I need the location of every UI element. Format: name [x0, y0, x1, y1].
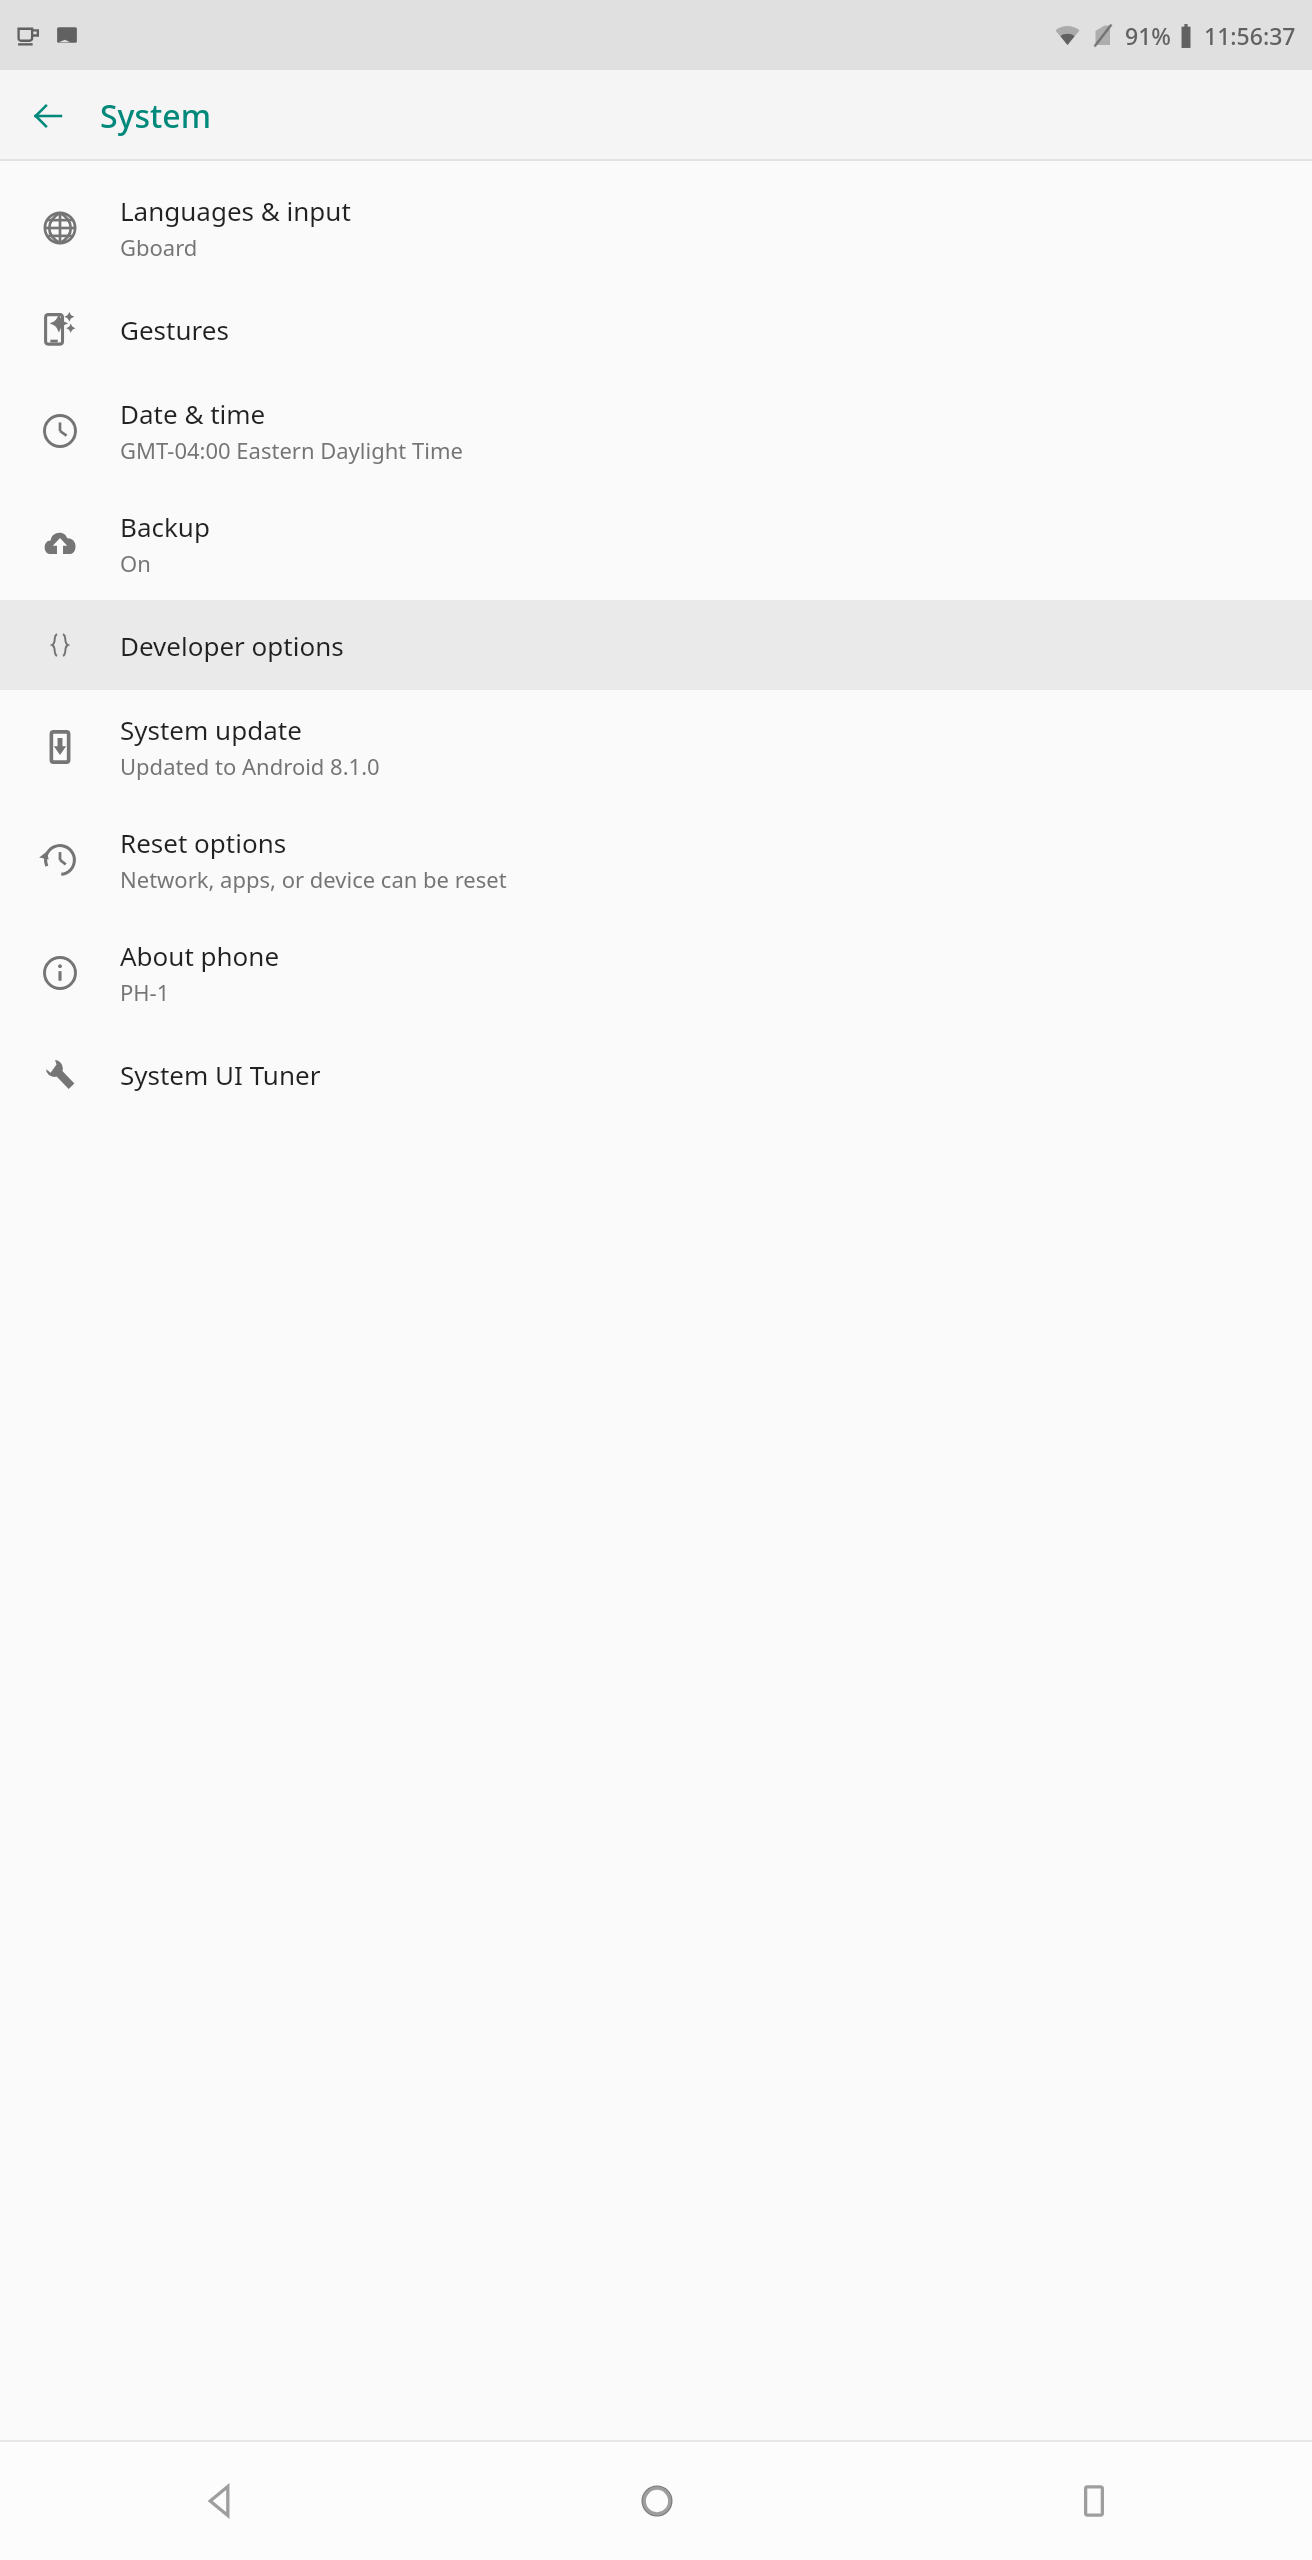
staticText: System update	[120, 712, 302, 747]
button[interactable]: Backup	[0, 487, 1312, 600]
staticText: 91%	[1125, 20, 1171, 51]
staticText: System UI Tuner	[120, 1057, 321, 1092]
staticText: GMT-04:00 Eastern Daylight Time	[120, 435, 463, 465]
staticText: About phone	[120, 938, 280, 973]
staticText: Reset options	[120, 825, 287, 860]
button[interactable]: Recent apps	[875, 2442, 1312, 2560]
button[interactable]: Gestures	[0, 284, 1312, 374]
button[interactable]: Back	[0, 2442, 438, 2560]
button[interactable]: Reset options	[0, 803, 1312, 916]
staticText: On	[120, 548, 151, 578]
button[interactable]: System update	[0, 690, 1312, 803]
button[interactable]: About phone	[0, 916, 1312, 1029]
button[interactable]: System UI Tuner	[0, 1029, 1312, 1119]
staticText: Date & time	[120, 396, 266, 431]
staticText: System	[100, 94, 211, 138]
button[interactable]: Languages & input	[0, 171, 1312, 284]
staticText: Backup	[120, 509, 210, 544]
button[interactable]: Developer options	[0, 600, 1312, 690]
button[interactable]: Date & time	[0, 374, 1312, 487]
staticText: Network, apps, or device can be reset	[120, 864, 507, 894]
staticText: PH-1	[120, 977, 170, 1007]
button[interactable]: Home	[438, 2442, 875, 2560]
staticText: Developer options	[120, 628, 344, 663]
staticText: Updated to Android 8.1.0	[120, 751, 380, 781]
staticText: 11:56:37	[1204, 20, 1296, 51]
staticText: Languages & input	[120, 193, 351, 228]
staticText: Gboard	[120, 232, 198, 262]
staticText: Gestures	[120, 312, 229, 347]
button[interactable]: Navigate up	[0, 70, 95, 161]
